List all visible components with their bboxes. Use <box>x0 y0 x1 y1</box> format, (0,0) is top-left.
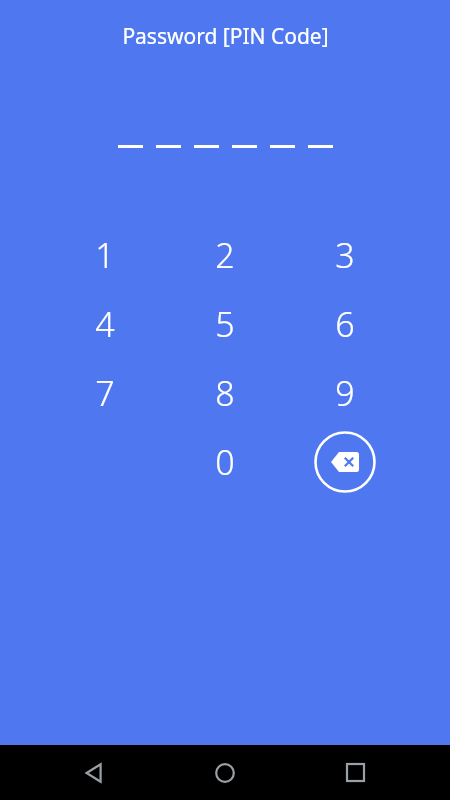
staticText: 9 <box>335 370 355 416</box>
staticText: 4 <box>95 301 115 347</box>
staticText: 5 <box>215 301 235 347</box>
staticText: Password [PIN Code] <box>122 22 329 51</box>
button[interactable]: 6 <box>285 289 405 358</box>
staticText: 0 <box>215 439 235 485</box>
staticText: 1 <box>95 232 115 278</box>
button[interactable]: 1 <box>45 220 165 289</box>
button[interactable]: 8 <box>165 358 285 427</box>
button[interactable]: 9 <box>285 358 405 427</box>
button[interactable]: 7 <box>45 358 165 427</box>
button[interactable]: Back <box>59 745 131 800</box>
button[interactable]: 2 <box>165 220 285 289</box>
button[interactable]: Recent apps <box>319 745 391 800</box>
staticText: 6 <box>335 301 355 347</box>
button[interactable]: 4 <box>45 289 165 358</box>
staticText: 2 <box>215 232 235 278</box>
staticText: 8 <box>215 370 235 416</box>
staticText: 7 <box>95 370 115 416</box>
button[interactable]: Home <box>189 745 261 800</box>
button[interactable]: 5 <box>165 289 285 358</box>
button[interactable]: Backspace <box>285 427 405 496</box>
button[interactable]: 0 <box>165 427 285 496</box>
staticText: 3 <box>335 232 355 278</box>
button[interactable]: 3 <box>285 220 405 289</box>
